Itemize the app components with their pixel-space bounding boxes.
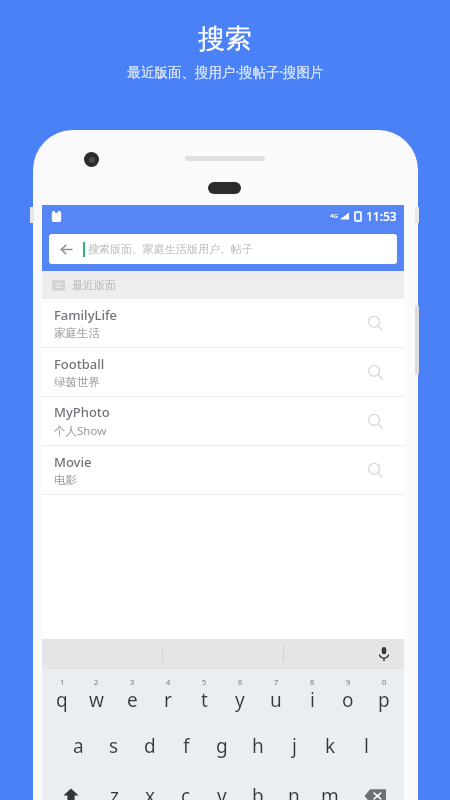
button[interactable]: Backspace	[348, 771, 402, 800]
button[interactable]: c	[168, 771, 204, 800]
staticText: 8	[310, 677, 315, 687]
staticText: z	[110, 783, 119, 800]
button[interactable]: a	[61, 721, 96, 771]
staticText: x	[145, 783, 156, 800]
staticText: w	[89, 687, 104, 713]
staticText: 最近版面	[72, 278, 116, 292]
button[interactable]: 2	[79, 669, 114, 721]
staticText: MyPhoto	[54, 403, 110, 421]
staticText: d	[144, 733, 156, 759]
staticText: 2	[94, 677, 99, 687]
staticText: 7	[274, 677, 279, 687]
button[interactable]: 3	[114, 669, 150, 721]
button[interactable]: Movie	[42, 446, 404, 495]
staticText: i	[310, 687, 315, 713]
button[interactable]: f	[168, 721, 204, 771]
button[interactable]: Football	[42, 348, 404, 397]
staticText: 家庭生活	[54, 326, 100, 340]
staticText: 1	[60, 677, 65, 687]
staticText: k	[325, 733, 336, 759]
staticText: r	[164, 687, 172, 713]
staticText: 5	[202, 677, 207, 687]
button[interactable]: Search Movie	[358, 453, 392, 487]
button[interactable]: x	[132, 771, 168, 800]
button[interactable]: 6	[222, 669, 258, 721]
button[interactable]: g	[204, 721, 240, 771]
button[interactable]: j	[276, 721, 312, 771]
staticText: Football	[54, 355, 105, 373]
staticText: l	[364, 733, 369, 759]
staticText: h	[252, 733, 264, 759]
staticText: a	[73, 733, 84, 759]
staticText: c	[181, 783, 191, 800]
staticText: e	[127, 687, 138, 713]
staticText: 绿茵世界	[54, 375, 100, 389]
staticText: 4G	[330, 212, 338, 220]
button[interactable]: v	[204, 771, 240, 800]
button[interactable]: h	[240, 721, 276, 771]
staticText: FamilyLife	[54, 306, 118, 324]
staticText: 搜索	[198, 22, 252, 56]
staticText: s	[109, 733, 119, 759]
button[interactable]: 4	[150, 669, 186, 721]
button[interactable]: Search Football	[358, 355, 392, 389]
button[interactable]: 7	[258, 669, 294, 721]
staticText: f	[183, 733, 190, 759]
staticText: 9	[346, 677, 351, 687]
staticText: Movie	[54, 453, 92, 471]
button[interactable]: 8	[294, 669, 330, 721]
staticText: 11:53	[366, 208, 397, 224]
staticText: n	[288, 783, 300, 800]
staticText: 3	[130, 677, 135, 687]
staticText: p	[378, 687, 390, 713]
button[interactable]: Back	[49, 234, 83, 264]
staticText: t	[201, 687, 208, 713]
staticText: 最近版面、搜用户·搜帖子·搜图片	[127, 63, 324, 81]
staticText: m	[321, 783, 339, 800]
button[interactable]: l	[348, 721, 384, 771]
button[interactable]: MyPhoto	[42, 397, 404, 446]
button[interactable]: b	[240, 771, 276, 800]
staticText: 电影	[54, 473, 77, 487]
staticText: o	[342, 687, 354, 713]
button[interactable]: 1	[44, 669, 79, 721]
staticText: 6	[238, 677, 243, 687]
button[interactable]: k	[312, 721, 348, 771]
staticText: 4	[166, 677, 171, 687]
button[interactable]: 9	[330, 669, 366, 721]
button[interactable]: 0	[366, 669, 402, 721]
button[interactable]: d	[132, 721, 168, 771]
button[interactable]: Voice input	[284, 639, 404, 669]
button[interactable]: z	[97, 771, 132, 800]
staticText: 0	[382, 677, 387, 687]
button[interactable]: FamilyLife	[42, 299, 404, 348]
staticText: g	[216, 733, 228, 759]
staticText: q	[56, 687, 68, 713]
staticText: u	[270, 687, 282, 713]
staticText: b	[252, 783, 264, 800]
staticText: j	[292, 733, 297, 759]
button[interactable]: Search FamilyLife	[358, 306, 392, 340]
button[interactable]: n	[276, 771, 312, 800]
staticText: y	[235, 687, 245, 713]
staticText: 搜索版面、家庭生活版用户、帖子	[88, 242, 253, 256]
button[interactable]: Back	[49, 234, 397, 264]
staticText: 个人Show	[54, 423, 107, 439]
button[interactable]: Search MyPhoto	[358, 404, 392, 438]
button[interactable]: Shift	[44, 771, 97, 800]
staticText: v	[217, 783, 227, 800]
button[interactable]: m	[312, 771, 348, 800]
button[interactable]: 5	[186, 669, 222, 721]
button[interactable]: s	[96, 721, 132, 771]
